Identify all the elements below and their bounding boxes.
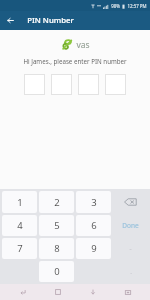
staticText: vas — [76, 39, 90, 51]
button[interactable]: Backspace — [113, 191, 148, 213]
staticText: PIN Number — [27, 15, 74, 26]
staticText: Done — [122, 221, 139, 230]
button[interactable]: 3 — [76, 191, 111, 213]
button[interactable]: Recent apps — [16, 285, 30, 299]
staticText: . — [130, 267, 132, 276]
button[interactable]: Hide keyboard — [121, 285, 135, 299]
button[interactable]: 9 — [76, 238, 111, 259]
staticText: 6 — [91, 219, 97, 232]
button[interactable]: PIN digit 4 — [105, 74, 126, 95]
button[interactable]: Back — [86, 285, 100, 299]
button[interactable]: PIN digit 3 — [78, 74, 99, 95]
staticText: Hi James., please enter PIN number — [23, 57, 127, 65]
button[interactable]: Done — [113, 215, 148, 236]
staticText: 12:57 PM — [127, 3, 147, 9]
staticText: 0 — [54, 265, 60, 278]
staticText: 5 — [54, 219, 60, 232]
staticText: 7 — [17, 242, 23, 255]
staticText: 4 — [17, 219, 23, 232]
button[interactable]: 6 — [76, 215, 111, 236]
staticText: 3 — [91, 196, 97, 209]
button[interactable]: 7 — [2, 238, 37, 259]
button[interactable]: 1 — [2, 191, 37, 213]
button[interactable]: Home — [51, 285, 65, 299]
staticText: 1 — [17, 196, 23, 209]
staticText: 8 — [54, 242, 60, 255]
button[interactable]: 8 — [39, 238, 74, 259]
button[interactable]: PIN digit 2 — [51, 74, 72, 95]
staticText: - — [129, 244, 132, 253]
button[interactable]: PIN digit 1 — [24, 74, 45, 95]
button[interactable]: 4 — [2, 215, 37, 236]
button[interactable]: Back — [4, 14, 17, 27]
staticText: 98% — [111, 3, 120, 9]
staticText: 9 — [91, 242, 97, 255]
button[interactable]: 0 — [39, 261, 74, 282]
button[interactable]: 5 — [39, 215, 74, 236]
button[interactable]: 2 — [39, 191, 74, 213]
staticText: 2 — [54, 196, 60, 209]
